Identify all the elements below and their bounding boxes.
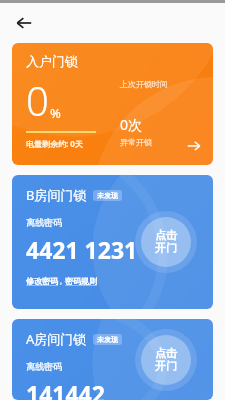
button[interactable]: 点击 开门 [141, 217, 191, 267]
staticText: A房间门锁 [26, 330, 87, 348]
staticText: % [50, 104, 61, 122]
button[interactable]: A房间门锁 [12, 319, 213, 400]
staticText: 入户门锁 [26, 53, 78, 69]
staticText: B房间门锁 [26, 186, 87, 204]
button[interactable]: 点击 开门 [141, 335, 191, 385]
staticText: 0次 [120, 115, 143, 134]
staticText: 离线密码 [26, 217, 62, 228]
staticText: 密码规则 [65, 276, 97, 286]
button[interactable]: B房间门锁 [12, 175, 213, 309]
staticText: 修改密码 [26, 276, 58, 286]
staticText: 未发现 [97, 335, 118, 344]
button[interactable]: 入户门锁 [12, 43, 213, 165]
staticText: 电量剩余约: 0天 [26, 138, 83, 149]
staticText: 点击 开门 [155, 228, 177, 256]
staticText: 未发现 [97, 191, 118, 200]
staticText: 4421 1231 [26, 234, 138, 265]
staticText: 异常开锁 [120, 137, 152, 147]
staticText: 0 [26, 73, 49, 127]
button[interactable]: Details [181, 133, 207, 159]
staticText: 离线密码 [26, 361, 62, 372]
staticText: 上次开锁时间 [120, 79, 168, 89]
staticText: 点击 开门 [155, 346, 177, 374]
button[interactable]: 修改密码 [26, 276, 58, 286]
button[interactable]: 密码规则 [65, 276, 97, 286]
staticText: , [58, 275, 65, 286]
staticText: 141442 [26, 378, 105, 400]
button[interactable]: Back [8, 7, 40, 39]
